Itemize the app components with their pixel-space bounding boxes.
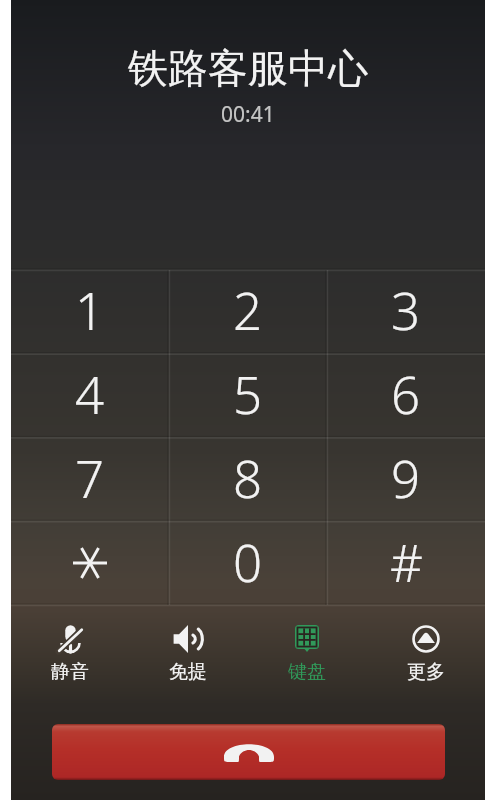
staticText: 5 [233,359,263,428]
button[interactable]: star [11,521,169,605]
button[interactable]: 6 [327,353,485,437]
staticText: 免提 [169,660,207,684]
button[interactable]: pound [327,521,485,605]
button[interactable]: 8 [169,437,327,521]
button[interactable]: 0 [169,521,327,605]
button[interactable]: 9 [327,437,485,521]
button[interactable]: 2 [169,270,327,353]
staticText: 0 [233,527,263,596]
button[interactable]: 静音 [11,605,129,703]
button[interactable]: 7 [11,437,169,521]
button[interactable]: 4 [11,353,169,437]
button[interactable]: 键盘 [247,605,366,703]
button[interactable]: End call [52,724,445,780]
button[interactable]: 1 [11,270,169,353]
staticText: 1 [75,275,105,344]
staticText: 8 [233,443,263,512]
button[interactable]: 3 [327,270,485,353]
staticText: 7 [75,443,105,512]
button[interactable]: 更多 [366,605,485,703]
button[interactable]: 5 [169,353,327,437]
staticText: 00:41 [221,100,275,129]
staticText: 2 [233,275,263,344]
staticText: 更多 [407,660,445,684]
staticText: 4 [75,359,105,428]
staticText: 铁路客服中心 [128,43,368,93]
staticText: # [390,527,423,596]
staticText: 静音 [51,660,89,684]
staticText: 3 [391,275,421,344]
staticText: 9 [391,443,421,512]
button[interactable]: 免提 [129,605,247,703]
staticText: 6 [391,359,421,428]
staticText: 键盘 [288,660,326,684]
